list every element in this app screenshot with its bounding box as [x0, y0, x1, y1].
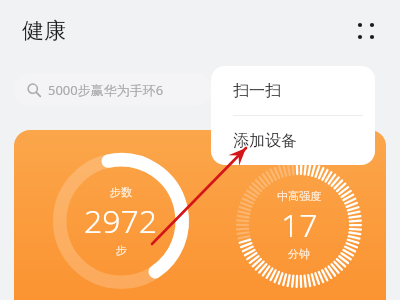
button[interactable]: More options [344, 9, 388, 53]
staticText: 步 [116, 243, 127, 257]
staticText: 2972 [84, 199, 158, 243]
staticText: 分钟 [288, 247, 310, 261]
staticText: 步数 [110, 185, 132, 199]
staticText: 5000步赢华为手环6 [48, 81, 164, 99]
button[interactable]: 步数 [14, 130, 386, 300]
button[interactable]: 5000步赢华为手环6 [14, 73, 212, 106]
button[interactable]: 添加设备 [211, 116, 375, 165]
staticText: 中高强度 [277, 189, 321, 203]
staticText: 健康 [22, 17, 66, 45]
staticText: 扫一扫 [233, 81, 281, 101]
staticText: 添加设备 [233, 131, 297, 151]
staticText: 17 [281, 203, 318, 247]
button[interactable]: 扫一扫 [211, 66, 375, 115]
